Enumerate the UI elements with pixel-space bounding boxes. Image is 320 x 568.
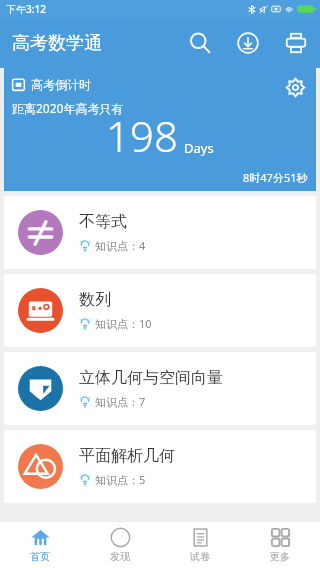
button[interactable]: Download (224, 19, 272, 67)
staticText: 发现 (110, 550, 130, 563)
staticText: 知识点：5 (95, 472, 146, 487)
staticText: 试卷 (190, 550, 210, 563)
staticText: 知识点：7 (95, 394, 146, 409)
staticText: 更多 (270, 550, 290, 563)
button[interactable]: Print (272, 19, 320, 67)
staticText: 高考倒计时 (31, 77, 91, 92)
staticText: 高考数学通 (12, 32, 102, 55)
button[interactable]: 首页 (0, 522, 80, 568)
button[interactable]: 试卷 (160, 522, 240, 568)
button[interactable]: 平面解析几何 (4, 430, 316, 503)
staticText: 距离2020年高考只有 (12, 100, 124, 116)
button[interactable]: Settings (282, 74, 308, 100)
button[interactable]: 高考倒计时 (4, 68, 316, 191)
staticText: 立体几何与空间向量 (79, 368, 223, 388)
button[interactable]: Search (176, 19, 224, 67)
staticText: 下午3:12 (6, 2, 46, 16)
staticText: 数列 (79, 290, 111, 310)
staticText: 198 (106, 107, 178, 164)
button[interactable]: 立体几何与空间向量 (4, 352, 316, 425)
staticText: 8时47分51秒 (243, 170, 308, 185)
button[interactable]: 更多 (240, 522, 320, 568)
button[interactable]: 不等式 (4, 196, 316, 269)
staticText: 知识点：4 (95, 238, 146, 253)
button[interactable]: 发现 (80, 522, 160, 568)
staticText: Days (184, 139, 214, 157)
staticText: 平面解析几何 (79, 446, 175, 466)
staticText: 首页 (30, 550, 50, 563)
staticText: 不等式 (79, 212, 127, 232)
button[interactable]: 数列 (4, 274, 316, 347)
staticText: 知识点：10 (95, 316, 152, 331)
